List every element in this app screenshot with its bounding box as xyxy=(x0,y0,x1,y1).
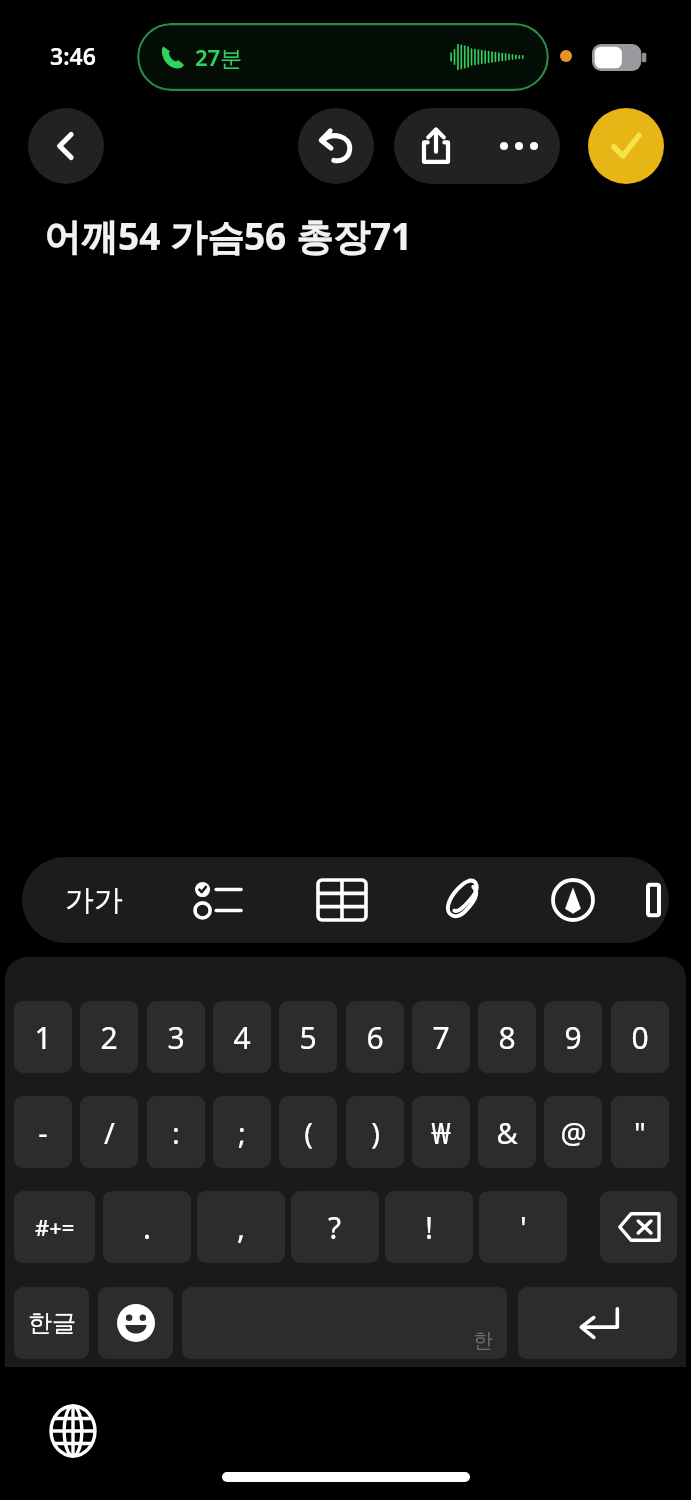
button[interactable]: , xyxy=(197,1191,285,1263)
button[interactable]: Table xyxy=(294,857,390,943)
staticText: @ xyxy=(560,1113,587,1152)
staticText: 8 xyxy=(498,1017,516,1058)
button[interactable]: - xyxy=(14,1096,72,1168)
staticText: 0 xyxy=(631,1017,649,1058)
button[interactable]: ( xyxy=(279,1096,337,1168)
button[interactable]: @ xyxy=(544,1096,602,1168)
button[interactable]: 2 xyxy=(80,1001,138,1073)
button[interactable]: ; xyxy=(213,1096,271,1168)
button[interactable]: 한글 xyxy=(14,1287,89,1359)
staticText: . xyxy=(143,1207,152,1248)
button[interactable]: More formatting xyxy=(648,880,668,920)
staticText: / xyxy=(104,1113,115,1152)
button[interactable]: 7 xyxy=(412,1001,470,1073)
button[interactable]: Markup xyxy=(525,857,621,943)
staticText: 가가 xyxy=(65,882,123,919)
button[interactable]: Change keyboard xyxy=(44,1402,102,1460)
button[interactable]: ) xyxy=(346,1096,404,1168)
staticText: ? xyxy=(328,1207,342,1248)
button[interactable]: 9 xyxy=(544,1001,602,1073)
staticText: 5 xyxy=(299,1017,317,1058)
button[interactable]: 6 xyxy=(346,1001,404,1073)
button[interactable]: Share xyxy=(394,108,477,184)
staticText: ₩ xyxy=(431,1113,451,1152)
staticText: - xyxy=(38,1113,48,1152)
button[interactable]: ? xyxy=(291,1191,379,1263)
button[interactable]: Return xyxy=(518,1287,677,1359)
staticText: ! xyxy=(425,1207,434,1248)
button[interactable]: & xyxy=(478,1096,536,1168)
staticText: , xyxy=(237,1207,246,1248)
button[interactable]: Back xyxy=(28,108,104,184)
staticText: ) xyxy=(371,1113,380,1152)
button[interactable]: Emoji xyxy=(98,1287,173,1359)
button[interactable]: Checklist xyxy=(170,857,266,943)
button[interactable]: . xyxy=(103,1191,191,1263)
button[interactable]: : xyxy=(147,1096,205,1168)
button[interactable]: More options xyxy=(477,108,560,184)
button[interactable]: 4 xyxy=(213,1001,271,1073)
staticText: 4 xyxy=(233,1017,251,1058)
button[interactable]: Backspace xyxy=(600,1191,677,1263)
button[interactable]: 3 xyxy=(147,1001,205,1073)
staticText: ; xyxy=(238,1113,246,1152)
staticText: 27분 xyxy=(195,42,243,72)
staticText: #+= xyxy=(35,1212,75,1242)
button[interactable]: ₩ xyxy=(412,1096,470,1168)
button[interactable]: 0 xyxy=(611,1001,669,1073)
staticText: & xyxy=(496,1113,518,1152)
staticText: 1 xyxy=(34,1017,52,1058)
staticText: " xyxy=(634,1113,646,1152)
button[interactable]: " xyxy=(611,1096,669,1168)
button[interactable]: 5 xyxy=(279,1001,337,1073)
staticText: 한 xyxy=(473,1328,493,1353)
staticText: 어깨54 가슴56 총장71 xyxy=(44,210,413,261)
button[interactable]: 1 xyxy=(14,1001,72,1073)
button[interactable]: Space xyxy=(182,1287,507,1359)
staticText: 6 xyxy=(366,1017,384,1058)
staticText: 2 xyxy=(100,1017,118,1058)
button[interactable]: Undo xyxy=(298,108,374,184)
button[interactable]: Done xyxy=(588,108,664,184)
staticText: 3 xyxy=(167,1017,185,1058)
button[interactable]: Active call 27 minutes xyxy=(137,23,549,91)
button[interactable]: Attach xyxy=(414,857,510,943)
staticText: : xyxy=(172,1113,180,1152)
staticText: 9 xyxy=(564,1017,582,1058)
button[interactable]: / xyxy=(80,1096,138,1168)
button[interactable]: ' xyxy=(479,1191,567,1263)
button[interactable]: 가가 xyxy=(40,857,148,943)
staticText: ' xyxy=(520,1207,527,1248)
staticText: 7 xyxy=(432,1017,450,1058)
button[interactable]: ! xyxy=(385,1191,473,1263)
staticText: 3:46 xyxy=(50,40,96,71)
button[interactable]: #+= xyxy=(14,1191,95,1263)
button[interactable]: 8 xyxy=(478,1001,536,1073)
staticText: 한글 xyxy=(28,1308,76,1338)
staticText: ( xyxy=(304,1113,313,1152)
